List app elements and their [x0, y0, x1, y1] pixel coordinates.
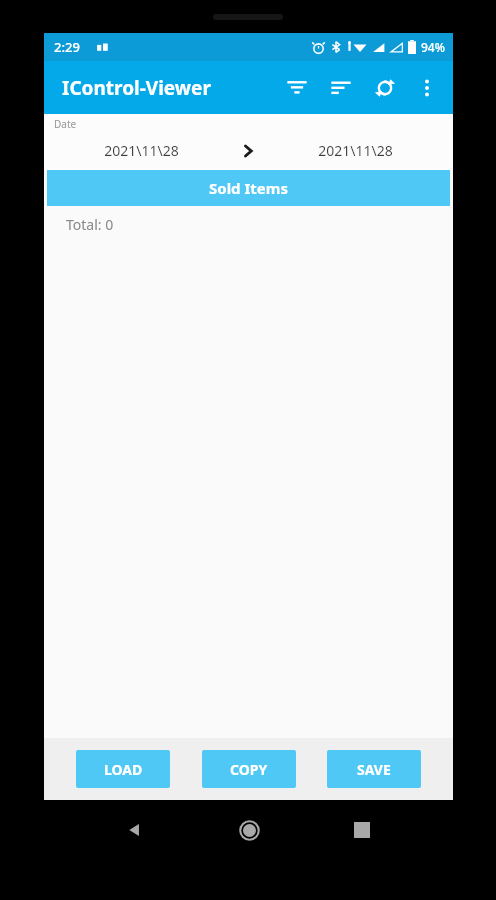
button[interactable]: Back — [113, 808, 157, 852]
staticText: LOAD — [104, 760, 143, 779]
staticText: COPY — [230, 760, 268, 779]
staticText: Sold Items — [209, 178, 288, 198]
button[interactable]: COPY — [202, 750, 296, 788]
button[interactable]: Home — [227, 808, 271, 852]
button[interactable]: Recents — [340, 808, 384, 852]
staticText: 2:29 — [54, 38, 80, 56]
staticText: SAVE — [357, 760, 391, 779]
button[interactable]: Filter — [275, 66, 319, 110]
button[interactable]: 2021\11\28 — [257, 131, 453, 170]
button[interactable]: Sold Items — [47, 170, 450, 206]
button[interactable]: 2021\11\28 — [44, 131, 239, 170]
button[interactable]: Sort — [319, 66, 363, 110]
button[interactable]: More options — [407, 68, 447, 108]
button[interactable]: LOAD — [76, 750, 170, 788]
staticText: 94% — [421, 39, 445, 55]
staticText: IControl-Viewer — [62, 75, 211, 101]
staticText: 2021\11\28 — [318, 141, 393, 160]
button[interactable]: SAVE — [327, 750, 421, 788]
staticText: 2021\11\28 — [104, 141, 179, 160]
button[interactable]: Refresh — [363, 66, 407, 110]
staticText: Date — [54, 117, 77, 131]
staticText: Total: 0 — [66, 215, 114, 234]
